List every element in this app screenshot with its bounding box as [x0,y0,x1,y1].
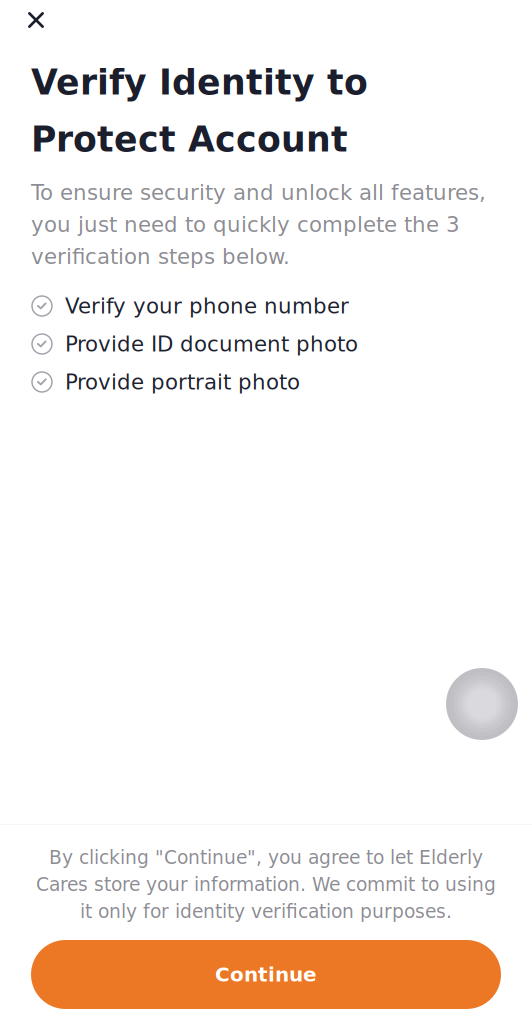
staticText: Provide ID document photo [65,332,358,356]
staticText: it only for identity verification purpos… [80,901,452,922]
staticText: Protect Account [31,119,348,160]
staticText: Provide portrait photo [65,370,300,394]
staticText: you just need to quickly complete the 3 [31,212,460,237]
staticText: Continue [215,963,317,986]
staticText: verification steps below. [31,244,290,269]
staticText: To ensure security and unlock all featur… [31,180,486,205]
button[interactable]: Continue [31,940,501,1009]
staticText: Cares store your information. We commit … [36,874,496,895]
staticText: By clicking "Continue", you agree to let… [49,847,483,868]
staticText: Verify Identity to [31,62,368,103]
staticText: Verify your phone number [65,294,349,318]
button[interactable]: Close [12,0,60,40]
